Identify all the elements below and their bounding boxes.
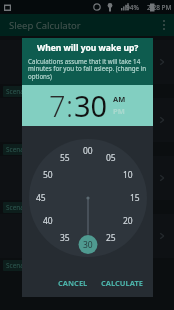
staticText: When should I go to bed? [30,172,138,184]
button[interactable]: 55 [29,139,147,257]
staticText: 20 [123,215,133,227]
staticText: I will wake up at [50,56,118,68]
button[interactable]: CALCULATE [96,274,148,292]
button[interactable]: 00 [29,139,147,257]
staticText: CALCULATE [101,278,143,288]
staticText: 50 [43,169,53,181]
button[interactable]: AM [113,94,126,104]
staticText: 55 [60,152,70,164]
button[interactable]: 30 [74,86,108,125]
button[interactable]: More options [154,14,174,36]
button[interactable]: 10 [29,139,147,257]
staticText: : [66,86,74,125]
button[interactable]: 35 [29,139,147,257]
staticText: 25 [106,232,116,244]
staticText: PM [113,106,125,116]
button[interactable]: I will wake up at [0,40,174,84]
button[interactable]: When should I go to bed? [0,156,174,200]
button[interactable]: 15 [29,139,147,257]
staticText: 05 [106,152,116,164]
staticText: Calculations assume that it will take 14… [28,57,147,81]
button[interactable]: 7 [49,86,66,125]
staticText: 30 [83,239,93,251]
staticText: 30 [74,86,108,125]
staticText: 7 [49,86,66,125]
staticText: Scenario [6,87,33,96]
staticText: 15 [130,192,140,204]
button[interactable]: 25 [29,139,147,257]
staticText: I want to sleep at [48,114,121,126]
staticText: Sleep Calculator [9,19,81,32]
staticText: AM [113,94,126,104]
staticText: 2:28 PM [147,3,172,12]
button[interactable]: I want to sleep at [0,98,174,142]
staticText: 10 [123,169,133,181]
button[interactable]: 05 [29,139,147,257]
button[interactable]: 20 [29,139,147,257]
staticText: When should I wake up? [33,230,136,242]
button[interactable]: 45 [29,139,147,257]
staticText: 35 [60,232,70,244]
button[interactable]: When should I wake up? [0,214,174,258]
staticText: Scenario [6,203,33,212]
staticText: 00 [83,145,93,157]
staticText: CANCEL [58,278,88,288]
button[interactable]: 30 [29,139,147,257]
button[interactable]: CANCEL [53,274,93,292]
staticText: Scenario [6,261,33,270]
button[interactable]: 50 [29,139,147,257]
staticText: Scenario [6,145,33,154]
staticText: 94% [126,3,139,12]
button[interactable]: 40 [29,139,147,257]
staticText: When will you wake up? [37,42,139,54]
staticText: 45 [36,192,46,204]
button[interactable]: PM [113,106,125,116]
staticText: 40 [43,215,53,227]
